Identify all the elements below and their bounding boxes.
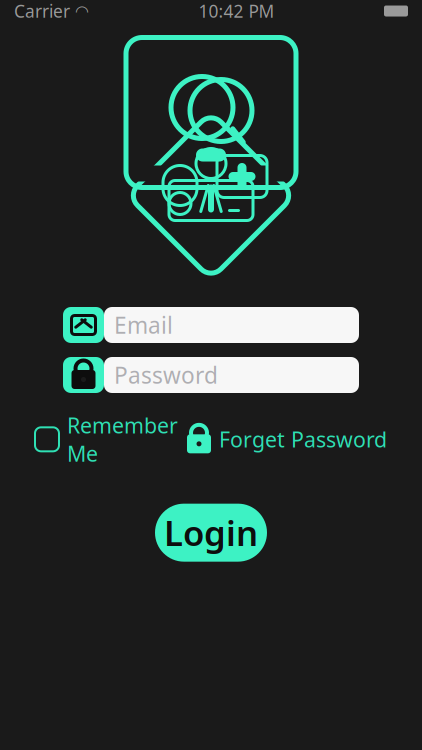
staticText: Remember Me: [67, 411, 178, 468]
staticText: ◠: [75, 2, 89, 20]
button[interactable]: Forget Password: [189, 425, 387, 453]
staticText: 10:42 PM: [198, 0, 274, 22]
staticText: Forget Password: [219, 425, 387, 453]
staticText: Email: [114, 310, 173, 340]
staticText: Login: [164, 510, 258, 556]
staticText: Carrier: [14, 0, 70, 22]
button[interactable]: Remember Me: [35, 411, 178, 468]
button[interactable]: Login: [155, 504, 267, 562]
staticText: Password: [114, 360, 218, 390]
